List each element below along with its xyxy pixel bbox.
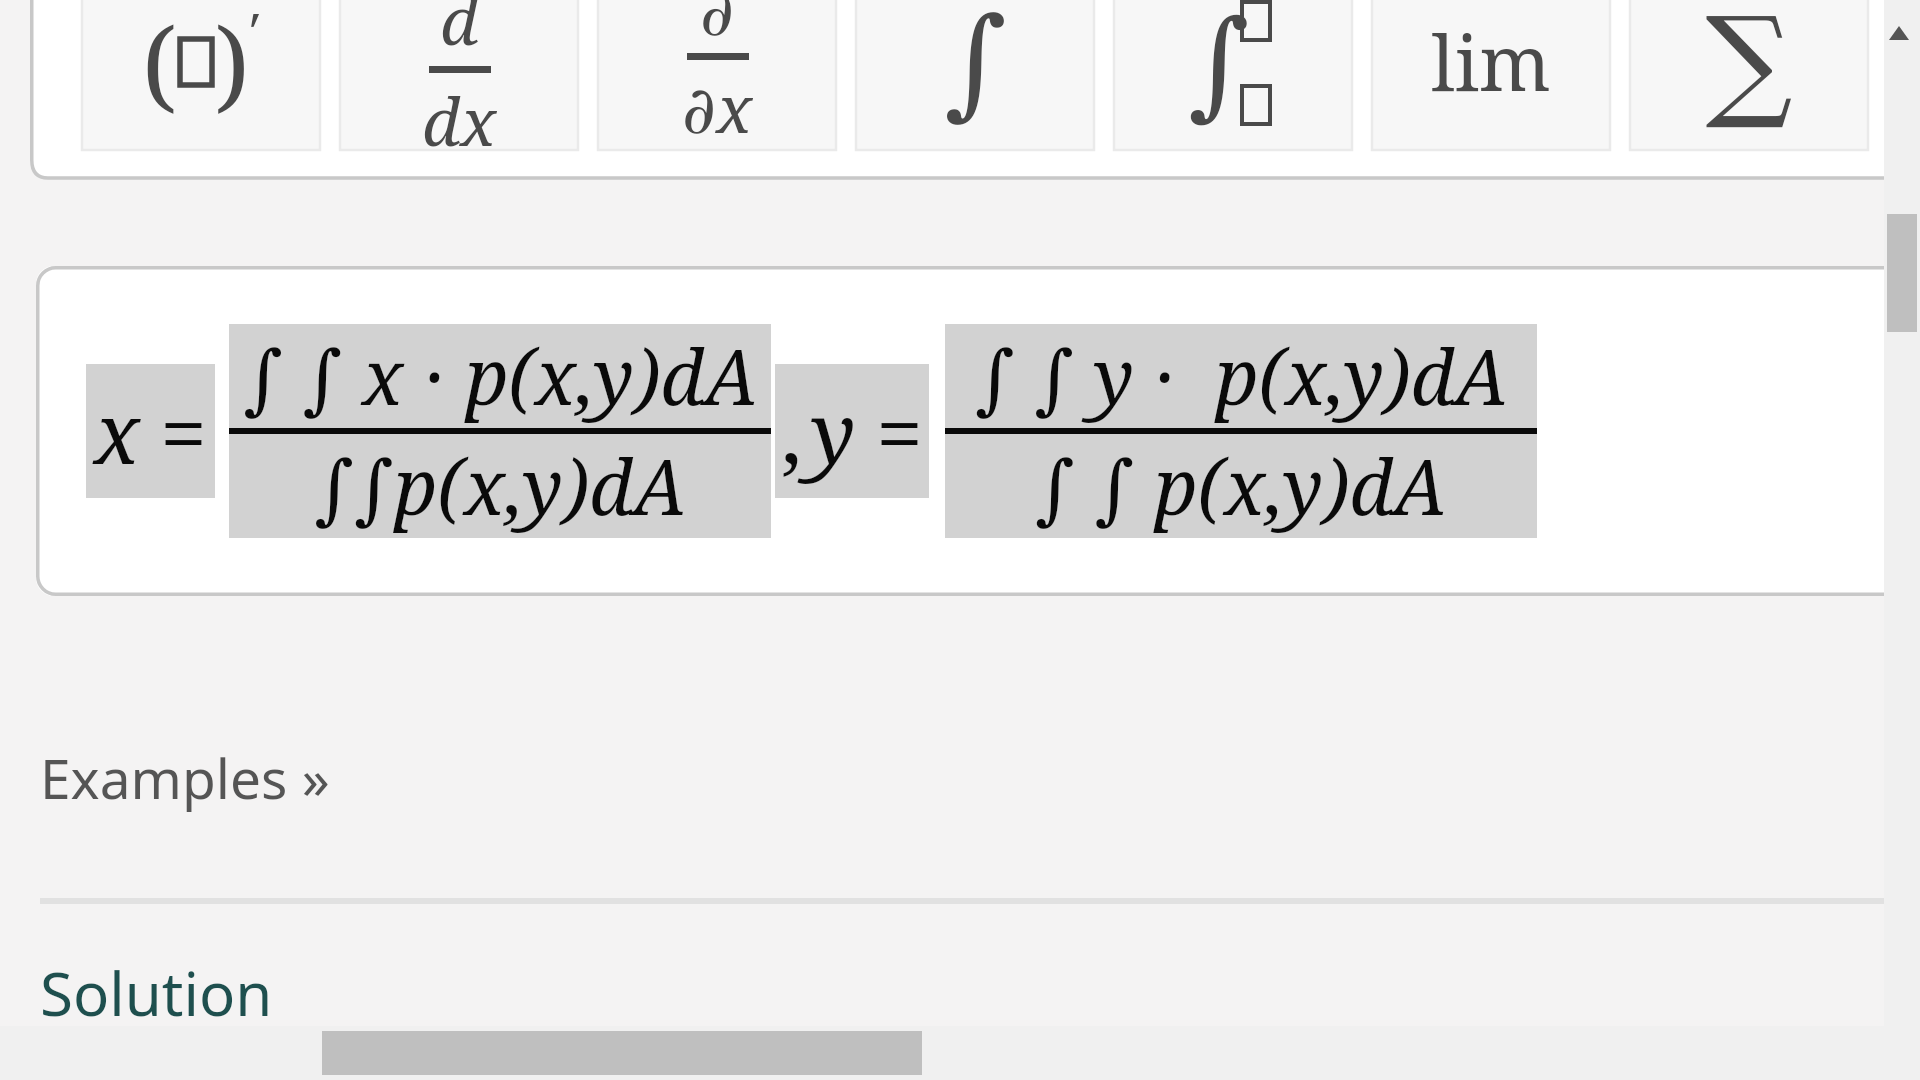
staticText: Solution — [40, 952, 273, 1034]
button[interactable]: limit — [1372, 0, 1610, 150]
button[interactable]: summation — [1630, 0, 1868, 150]
staticText: dx — [422, 75, 497, 150]
staticText: = — [876, 374, 923, 488]
staticText: ∫ ∫ y · p(x,y)dA — [975, 324, 1508, 428]
staticText: , — [781, 374, 803, 488]
staticText: d — [440, 0, 479, 64]
staticText: y — [811, 374, 856, 488]
staticText: ( — [142, 0, 177, 130]
staticText: ∑ — [1705, 0, 1793, 133]
staticText: Examples » — [40, 740, 330, 815]
staticText: ∂x — [682, 62, 753, 150]
button[interactable]: definite integral — [1114, 0, 1352, 150]
staticText: = — [160, 374, 207, 488]
staticText: ∫ — [1188, 0, 1250, 131]
staticText: ′ — [250, 0, 261, 69]
button[interactable]: derivative of expression — [82, 0, 320, 150]
button[interactable]: partial derivative — [598, 0, 836, 150]
button[interactable]: Examples » — [34, 734, 336, 821]
staticText: ∫∫p(x,y)dA — [314, 434, 687, 538]
staticText: ∂ — [700, 0, 735, 51]
staticText: lim — [1431, 10, 1551, 114]
button[interactable]: Solution — [34, 946, 279, 1040]
button[interactable]: integral — [856, 0, 1094, 150]
other: Scroll up — [1889, 26, 1909, 40]
button[interactable]: derivative d dx — [340, 0, 578, 150]
staticText: ∫ ∫ x · p(x,y)dA — [243, 324, 758, 428]
staticText: ∫ ∫ p(x,y)dA — [1035, 434, 1447, 538]
staticText: x — [94, 374, 140, 488]
staticText: ) — [215, 0, 250, 130]
staticText: ∫ — [944, 0, 1007, 132]
